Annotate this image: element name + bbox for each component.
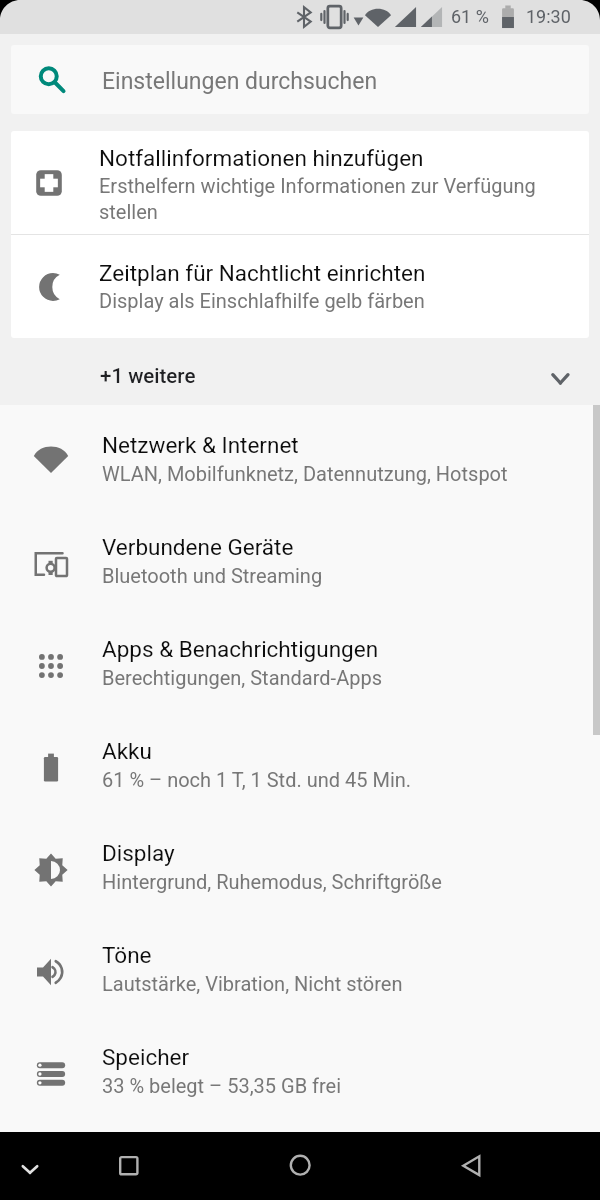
button[interactable]: +1 weitere [0, 338, 600, 405]
button[interactable]: Display [0, 819, 600, 921]
staticText: Verbundene Geräte [102, 534, 294, 560]
staticText: Display als Einschlafhilfe gelb färben [99, 289, 425, 312]
staticText: Berechtigungen, Standard-Apps [102, 666, 382, 689]
button[interactable]: Töne [0, 921, 600, 1023]
staticText: +1 weitere [100, 364, 196, 388]
staticText: Einstellungen durchsuchen [102, 68, 378, 95]
button[interactable]: Recent apps [86, 1132, 172, 1200]
button[interactable]: Akku [0, 717, 600, 819]
staticText: Apps & Benachrichtigungen [102, 636, 379, 662]
staticText: Notfallinformationen hinzufügen [99, 145, 424, 171]
staticText: Lautstärke, Vibration, Nicht stören [102, 972, 403, 995]
staticText: Töne [102, 942, 152, 968]
staticText: Display [102, 840, 175, 866]
button[interactable]: Apps & Benachrichtigungen [0, 615, 600, 717]
staticText: Netzwerk & Internet [102, 432, 299, 458]
button[interactable]: Home [258, 1132, 344, 1200]
button[interactable]: Verbundene Geräte [0, 513, 600, 615]
staticText: 19:30 [526, 6, 571, 27]
button[interactable]: Speicher [0, 1023, 600, 1125]
button[interactable]: Zeitplan für Nachtlicht einrichten [11, 235, 589, 338]
button[interactable]: Hide keyboard [0, 1132, 84, 1200]
button[interactable]: Netzwerk & Internet [0, 411, 600, 513]
staticText: Bluetooth und Streaming [102, 564, 323, 587]
staticText: Hintergrund, Ruhemodus, Schriftgröße [102, 870, 442, 893]
staticText: 61 % [451, 6, 489, 27]
staticText: 33 % belegt – 53,35 GB frei [102, 1074, 342, 1097]
staticText: Akku [102, 738, 152, 764]
button[interactable]: Notfallinformationen hinzufügen [11, 131, 589, 234]
staticText: 61 % – noch 1 T, 1 Std. und 45 Min. [102, 768, 412, 791]
staticText: Speicher [102, 1044, 190, 1070]
staticText: Ersthelfern wichtige Informationen zur V… [99, 174, 574, 223]
button[interactable]: Einstellungen durchsuchen [11, 45, 589, 114]
staticText: Zeitplan für Nachtlicht einrichten [99, 260, 426, 286]
button[interactable]: Back [430, 1132, 516, 1200]
staticText: WLAN, Mobilfunknetz, Datennutzung, Hotsp… [102, 462, 508, 485]
